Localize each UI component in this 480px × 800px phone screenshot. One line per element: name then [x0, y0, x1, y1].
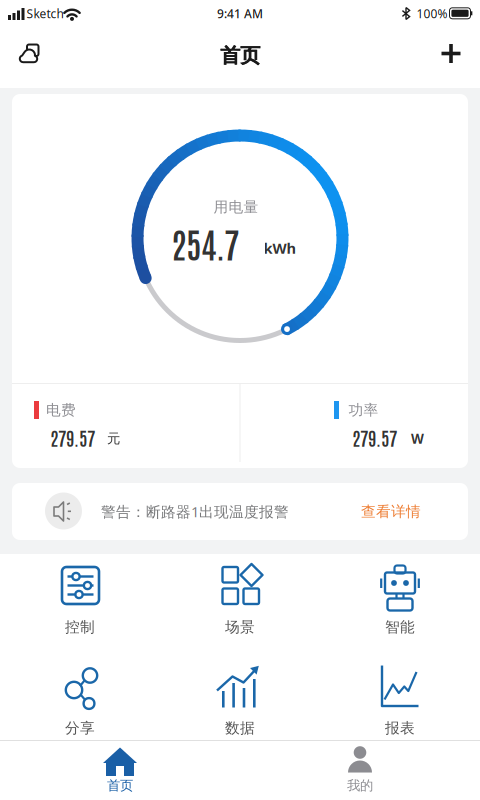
staticText: 元: [107, 430, 120, 447]
staticText: 首页: [220, 43, 260, 68]
staticText: 100%: [416, 5, 447, 21]
staticText: 控制: [65, 618, 95, 636]
staticText: 查看详情: [361, 502, 421, 520]
staticText: 279.57: [352, 424, 397, 449]
staticText: 9:41 AM: [217, 5, 263, 21]
staticText: kWh: [263, 238, 296, 258]
staticText: 254.7: [171, 220, 239, 265]
staticText: 警告：断路器1出现温度报警: [101, 502, 289, 521]
staticText: Sketch: [26, 5, 63, 21]
staticText: 分享: [65, 719, 95, 737]
staticText: 智能: [385, 618, 415, 636]
staticText: 279.57: [50, 424, 95, 449]
staticText: 首页: [107, 777, 133, 794]
staticText: 我的: [347, 777, 373, 794]
staticText: 数据: [225, 719, 255, 737]
staticText: 用电量: [213, 198, 258, 216]
staticText: 功率: [348, 401, 378, 419]
staticText: 场景: [225, 618, 255, 636]
staticText: 报表: [385, 719, 415, 737]
staticText: W: [411, 430, 424, 447]
staticText: 首页: [221, 43, 261, 68]
staticText: 电费: [46, 401, 76, 419]
